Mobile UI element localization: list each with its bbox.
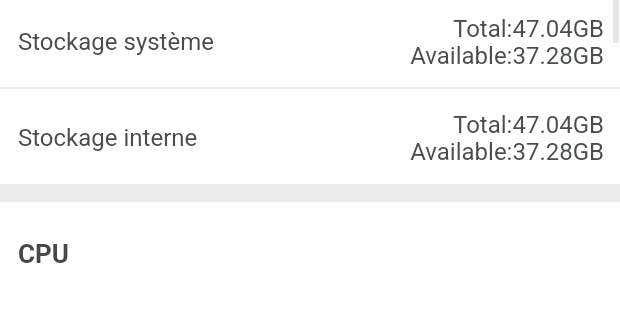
- staticText: Total:47.04GB Available:37.28GB: [410, 15, 604, 69]
- button[interactable]: Stockage système: [0, 0, 620, 87]
- staticText: CPU: [18, 239, 69, 269]
- button[interactable]: Stockage interne: [0, 89, 620, 184]
- staticText: Stockage système: [18, 28, 214, 56]
- staticText: Stockage interne: [18, 124, 198, 152]
- staticText: Total:47.04GB Available:37.28GB: [410, 111, 604, 165]
